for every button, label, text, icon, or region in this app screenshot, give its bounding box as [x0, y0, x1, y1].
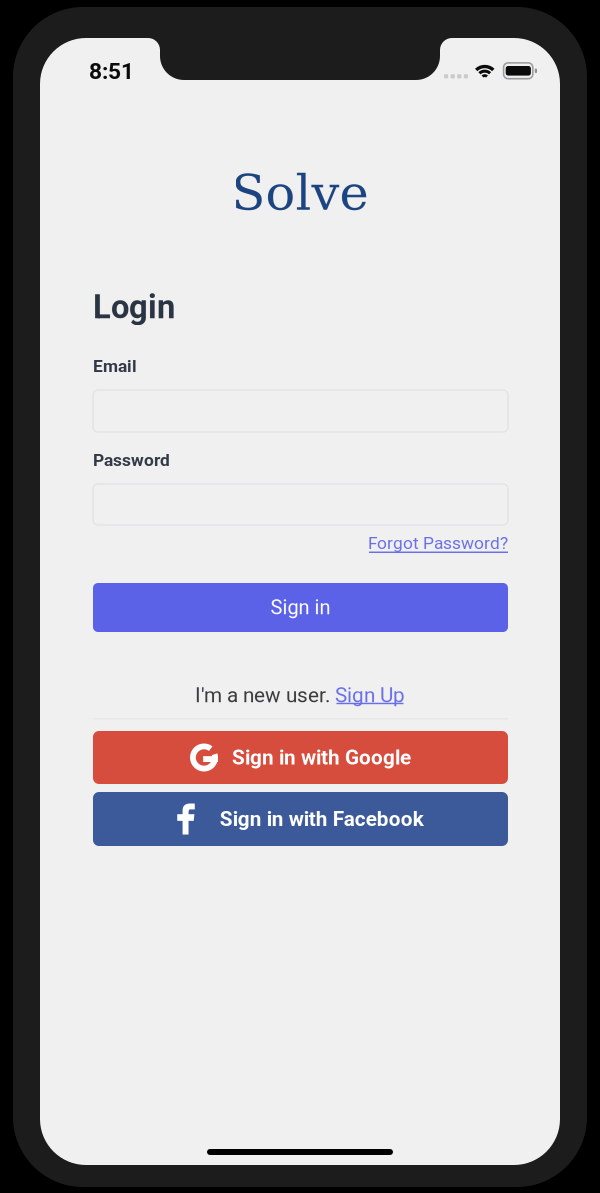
staticText: Sign Up: [335, 683, 405, 707]
staticText: Sign in with Facebook: [220, 807, 424, 831]
staticText: Login: [93, 288, 175, 326]
staticText: Solve: [231, 164, 368, 221]
button[interactable]: Sign in: [93, 583, 508, 632]
staticText: I'm a new user.: [195, 683, 335, 707]
staticText: Sign in with Google: [232, 745, 411, 770]
staticText: Sign in: [270, 596, 330, 619]
staticText: Password: [93, 450, 170, 470]
button[interactable]: Sign in with Google: [93, 731, 508, 784]
staticText: Forgot Password?: [368, 533, 508, 553]
staticText: 8:51: [89, 58, 134, 85]
button[interactable]: Sign Up: [335, 683, 405, 707]
button[interactable]: Sign in with Facebook: [93, 792, 508, 846]
staticText: Email: [93, 356, 137, 376]
button[interactable]: Forgot Password?: [93, 533, 508, 553]
